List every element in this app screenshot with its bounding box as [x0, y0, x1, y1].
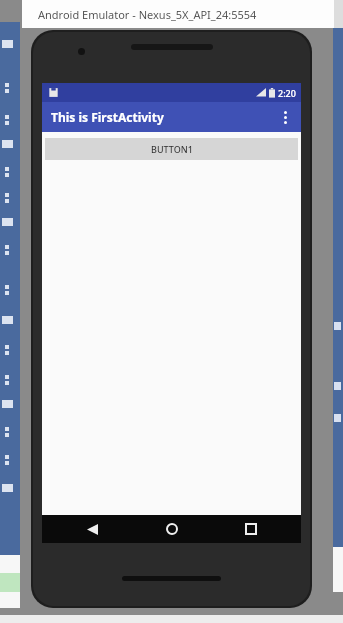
button[interactable]: Back — [62, 515, 122, 543]
staticText: BUTTON1 — [151, 143, 193, 155]
staticText: 2:20 — [278, 87, 296, 99]
button[interactable]: BUTTON1 — [45, 138, 298, 160]
staticText: Android Emulator - Nexus_5X_API_24:5554 — [38, 7, 257, 22]
button[interactable]: Recent apps — [221, 515, 281, 543]
button[interactable]: Home — [142, 515, 202, 543]
button[interactable]: More options — [272, 104, 298, 130]
staticText: This is FirstActivity — [51, 109, 164, 125]
